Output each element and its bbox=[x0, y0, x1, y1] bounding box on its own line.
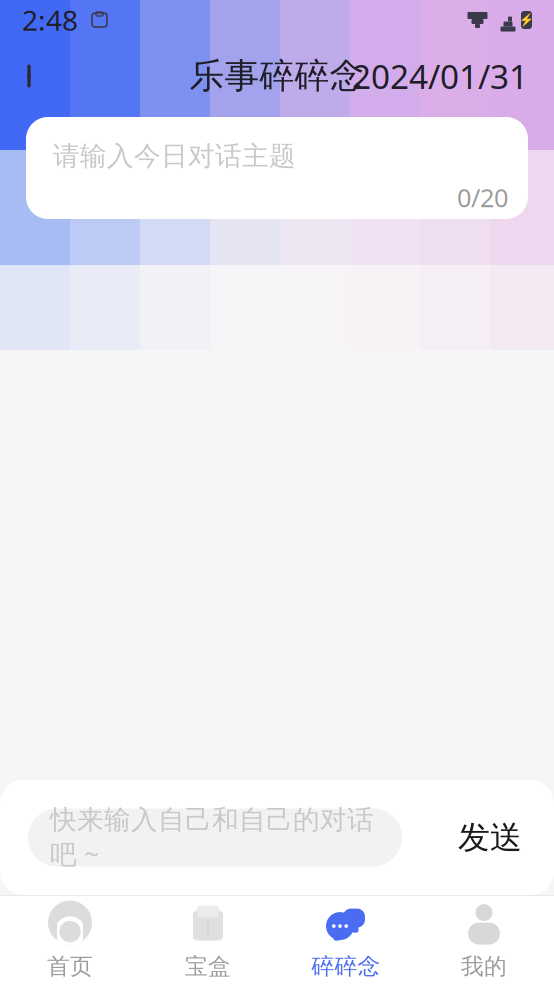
button[interactable]: 返回 bbox=[0, 48, 52, 104]
staticText: 快来输入自己和自己的对话吧 ~ bbox=[50, 803, 374, 872]
staticText: 发送 bbox=[458, 818, 522, 857]
button[interactable]: 碎碎念 bbox=[277, 896, 415, 984]
button[interactable]: 首页 bbox=[1, 896, 139, 984]
staticText: 首页 bbox=[47, 953, 93, 980]
button[interactable]: 宝盒 bbox=[139, 896, 277, 984]
button[interactable]: 发送 bbox=[440, 808, 540, 866]
staticText: 0/20 bbox=[457, 181, 508, 214]
staticText: 乐事碎碎念 bbox=[189, 55, 364, 97]
button[interactable]: 我的 bbox=[415, 896, 553, 984]
staticText: 我的 bbox=[461, 953, 507, 980]
staticText: 2024/01/31 bbox=[352, 54, 528, 98]
staticText: 碎碎念 bbox=[311, 953, 380, 980]
staticText: ⚡ bbox=[519, 13, 534, 27]
staticText: 请输入今日对话主题 bbox=[53, 140, 296, 173]
staticText: 宝盒 bbox=[185, 953, 231, 980]
staticText: 2:48 bbox=[22, 1, 78, 39]
